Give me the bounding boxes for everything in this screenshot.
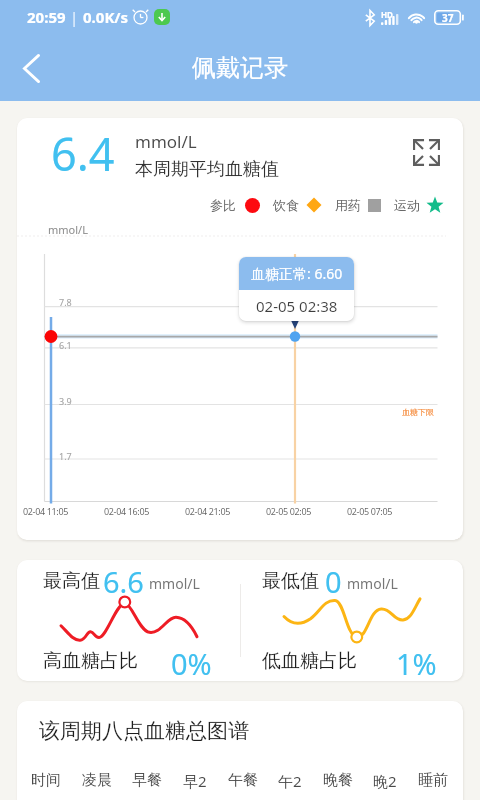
staticText: mmol/L <box>149 574 200 593</box>
staticText: 晚2 <box>373 771 397 791</box>
staticText: 02-04 21:05 <box>185 505 230 517</box>
staticText: mmol/L <box>135 130 197 153</box>
staticText: 6.4 <box>51 123 115 184</box>
staticText: 早2 <box>183 771 207 791</box>
staticText: 02-05 02:38 <box>256 296 338 316</box>
button[interactable]: 最低值 <box>240 560 463 681</box>
staticText: 高血糖占比 <box>43 649 138 673</box>
staticText: 02-05 02:05 <box>266 505 311 517</box>
staticText: 0 <box>325 562 342 601</box>
staticText: 本周期平均血糖值 <box>135 158 279 181</box>
staticText: 37 <box>442 11 454 25</box>
button[interactable]: Fullscreen <box>407 133 446 172</box>
staticText: 运动 <box>394 197 420 213</box>
staticText: 参比 <box>210 197 236 213</box>
staticText: mmol/L <box>48 222 88 237</box>
staticText: 用药 <box>335 197 361 213</box>
staticText: 6.1 <box>59 339 72 351</box>
staticText: 时间 <box>31 771 61 790</box>
staticText: 1% <box>396 644 437 681</box>
staticText: 最高值 <box>43 569 100 593</box>
staticText: | <box>66 7 83 27</box>
staticText: 3.9 <box>59 395 72 407</box>
button[interactable]: 最高值 <box>17 560 240 681</box>
staticText: 6.6 <box>103 562 144 601</box>
staticText: 0% <box>171 644 212 681</box>
staticText: 低血糖占比 <box>262 649 357 673</box>
staticText: 该周期八点血糖总图谱 <box>39 718 249 744</box>
staticText: 佩戴记录 <box>192 53 288 83</box>
staticText: 凌晨 <box>82 771 112 790</box>
staticText: 02-04 16:05 <box>104 505 149 517</box>
staticText: 1.7 <box>59 450 72 462</box>
staticText: 7.8 <box>59 296 72 308</box>
staticText: 早餐 <box>132 771 162 790</box>
staticText: 血糖正常: 6.60 <box>251 264 343 283</box>
staticText: 饮食 <box>273 197 299 213</box>
button[interactable]: Back <box>7 50 56 86</box>
staticText: HD <box>381 9 393 20</box>
staticText: 午2 <box>278 771 302 791</box>
staticText: 血糖下限 <box>402 407 434 417</box>
staticText: 02-05 07:05 <box>347 505 392 517</box>
staticText: mmol/L <box>347 574 398 593</box>
staticText: 睡前 <box>418 771 448 790</box>
staticText: 0.0K/s <box>83 7 129 27</box>
staticText: 02-04 11:05 <box>23 505 68 517</box>
staticText: 午餐 <box>228 771 258 790</box>
staticText: 晚餐 <box>323 771 353 790</box>
staticText: 20:59 <box>27 7 66 27</box>
staticText: 最低值 <box>262 569 319 593</box>
